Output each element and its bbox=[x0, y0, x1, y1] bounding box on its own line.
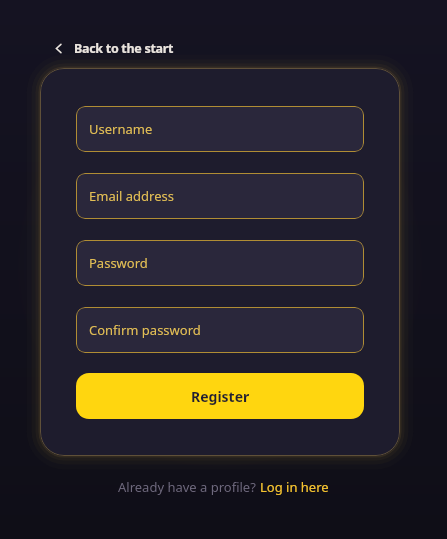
button[interactable]: Password bbox=[76, 240, 364, 286]
staticText: Register bbox=[191, 387, 250, 406]
button[interactable]: Username bbox=[76, 106, 364, 152]
staticText: Back to the start bbox=[74, 40, 174, 57]
button[interactable]: Email address bbox=[76, 173, 364, 219]
staticText: Password bbox=[89, 254, 148, 272]
staticText: Username bbox=[89, 120, 153, 138]
staticText: Already have a profile? bbox=[118, 478, 260, 496]
button[interactable]: Log in here bbox=[260, 478, 329, 496]
staticText: Confirm password bbox=[89, 321, 201, 339]
button[interactable]: Confirm password bbox=[76, 307, 364, 353]
staticText: Email address bbox=[89, 187, 174, 205]
button[interactable]: Back to the start bbox=[55, 40, 174, 57]
button[interactable]: Register bbox=[76, 373, 364, 419]
